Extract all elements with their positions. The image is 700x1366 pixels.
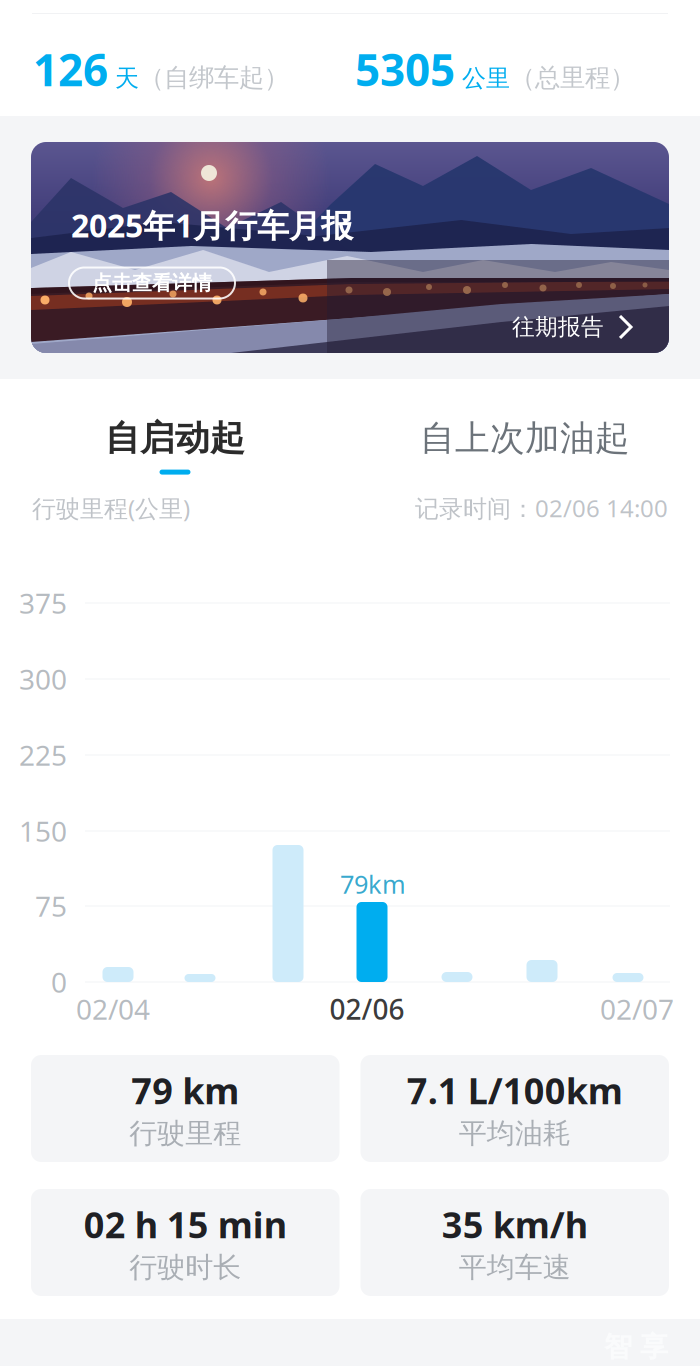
staticText: 75 <box>35 887 67 925</box>
staticText: 记录时间：02/06 14:00 <box>415 492 668 524</box>
staticText: 35 km/h <box>442 1200 588 1248</box>
staticText: 平均车速 <box>459 1250 571 1285</box>
staticText: 02/07 <box>600 990 674 1028</box>
staticText: 02/06 <box>329 990 404 1028</box>
staticText: 行驶里程(公里) <box>32 492 190 524</box>
staticText: 150 <box>19 812 67 850</box>
staticText: 225 <box>19 736 67 774</box>
button[interactable]: 自启动起 <box>0 379 350 483</box>
staticText: 自上次加油起 <box>420 417 630 460</box>
button[interactable]: 2025年1月行车月报 <box>31 142 669 353</box>
staticText: 02 h 15 min <box>84 1200 287 1248</box>
staticText: 375 <box>19 584 67 622</box>
staticText: 行驶时长 <box>129 1250 241 1285</box>
staticText: 平均油耗 <box>459 1116 571 1151</box>
button[interactable]: 7.1 L/100km <box>360 1055 669 1162</box>
button[interactable]: 35 km/h <box>360 1189 669 1296</box>
button[interactable]: 02 h 15 min <box>31 1189 339 1296</box>
staticText: 2025年1月行车月报 <box>71 204 353 246</box>
staticText: 02/04 <box>76 990 150 1028</box>
staticText: 5305 <box>355 40 455 98</box>
button[interactable]: 79 km <box>31 1055 339 1162</box>
staticText: 79km <box>340 867 406 901</box>
staticText: （自绑车起） <box>139 62 289 93</box>
staticText: 0 <box>51 963 67 1001</box>
staticText: 79 km <box>131 1066 239 1114</box>
staticText: 往期报告 <box>512 313 604 341</box>
staticText: 点击查看详情 <box>92 271 212 295</box>
staticText: 300 <box>19 660 67 698</box>
button[interactable]: 自上次加油起 <box>350 379 700 483</box>
staticText: 天 <box>108 64 139 93</box>
staticText: 自启动起 <box>105 417 245 460</box>
staticText: 7.1 L/100km <box>407 1066 623 1114</box>
staticText: （总里程） <box>510 62 635 93</box>
staticText: 行驶里程 <box>129 1116 241 1151</box>
staticText: 公里 <box>455 64 510 93</box>
staticText: 126 <box>33 40 108 98</box>
